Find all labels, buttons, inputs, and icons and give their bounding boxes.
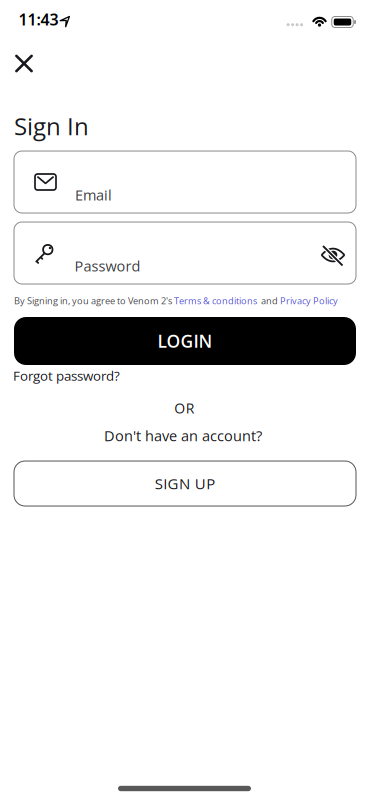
- staticText: Privacy Policy: [280, 294, 338, 307]
- button[interactable]: Password: [14, 222, 356, 284]
- staticText: Don't have an account?: [104, 426, 262, 445]
- staticText: Terms & conditions: [174, 294, 257, 307]
- button[interactable]: [15, 55, 32, 72]
- staticText: SIGN UP: [155, 473, 215, 494]
- button[interactable]: Email: [14, 151, 356, 213]
- button[interactable]: Terms & conditions: [174, 294, 257, 307]
- staticText: LOGIN: [157, 329, 212, 353]
- staticText: Sign In: [14, 109, 89, 142]
- staticText: OR: [174, 398, 195, 418]
- button[interactable]: Forgot password?: [13, 367, 120, 385]
- staticText: Password: [74, 256, 140, 276]
- staticText: Email: [75, 185, 112, 205]
- staticText: and: [257, 294, 280, 307]
- button[interactable]: LOGIN: [14, 317, 356, 365]
- button[interactable]: SIGN UP: [14, 461, 356, 506]
- staticText: By Signing in, you agree to Venom 2's: [14, 294, 174, 307]
- staticText: Forgot password?: [13, 367, 120, 385]
- button[interactable]: [320, 242, 346, 268]
- staticText: 11:43: [18, 9, 58, 30]
- button[interactable]: Privacy Policy: [280, 294, 338, 307]
